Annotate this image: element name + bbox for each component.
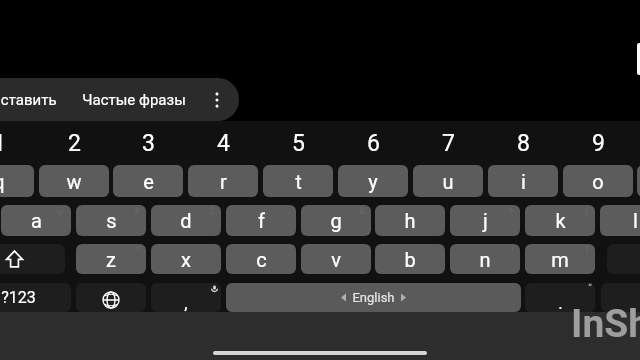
staticText: ?123 (1, 288, 36, 307)
staticText: 6 (367, 130, 380, 157)
button[interactable]: g (301, 205, 371, 236)
staticText: z (106, 248, 116, 271)
staticText: English (352, 290, 395, 305)
staticText: ( (585, 206, 589, 217)
staticText: i (521, 170, 526, 193)
staticText: n (479, 248, 491, 271)
button[interactable]: 4 (188, 128, 258, 158)
staticText: j (483, 209, 488, 232)
button[interactable]: w (39, 165, 109, 197)
button[interactable]: q (0, 165, 34, 197)
staticText: f (258, 209, 265, 232)
staticText: t (295, 170, 302, 193)
button[interactable]: h (375, 205, 445, 236)
button[interactable]: Change keyboard language (76, 283, 146, 312)
staticText: s (106, 209, 117, 232)
button[interactable]: 7 (413, 128, 483, 158)
staticText: o (592, 170, 604, 193)
staticText: Вставить (0, 91, 57, 109)
staticText: l (633, 209, 638, 232)
button[interactable]: Enter (601, 283, 640, 312)
button[interactable]: n (450, 244, 520, 274)
button[interactable]: p (637, 165, 640, 197)
staticText: # (134, 206, 140, 217)
button[interactable]: Вставить (0, 78, 74, 121)
button[interactable]: z (76, 244, 146, 274)
button[interactable]: English (226, 283, 521, 312)
button[interactable]: 9 (563, 128, 633, 158)
staticText: y (368, 170, 378, 193)
staticText: q (0, 170, 5, 193)
button[interactable]: 1 (0, 128, 34, 158)
staticText: @ (56, 206, 65, 217)
button[interactable]: a (1, 205, 71, 236)
staticText: “ (588, 283, 592, 295)
button[interactable]: f (226, 205, 296, 236)
button[interactable]: s (76, 205, 146, 236)
button[interactable]: e (113, 165, 183, 197)
button[interactable]: Shift (0, 244, 65, 274)
button[interactable]: t (263, 165, 333, 197)
button[interactable]: r (188, 165, 258, 197)
staticText: w (66, 170, 82, 193)
staticText: c (256, 248, 267, 271)
button[interactable]: c (226, 244, 296, 274)
button[interactable]: x (151, 244, 221, 274)
staticText: v (331, 248, 341, 271)
staticText: ! (511, 245, 514, 256)
staticText: & (359, 206, 365, 217)
staticText: d (180, 209, 192, 232)
button[interactable]: b (375, 244, 445, 274)
staticText: 3 (142, 130, 155, 157)
button[interactable]: j (450, 205, 520, 236)
staticText: 4 (217, 130, 230, 157)
staticText: 1 (0, 130, 6, 157)
button[interactable]: Частые фразы (74, 78, 194, 121)
button[interactable]: , (151, 283, 221, 312)
button[interactable]: 2 (39, 128, 109, 158)
button[interactable]: 3 (113, 128, 183, 158)
staticText: 9 (592, 130, 605, 157)
button[interactable]: v (301, 244, 371, 274)
button[interactable]: More options (195, 78, 239, 121)
staticText: ? (584, 245, 589, 256)
staticText: k (555, 209, 566, 232)
button[interactable]: y (338, 165, 408, 197)
button[interactable]: 6 (338, 128, 408, 158)
button[interactable]: ?123 (0, 283, 71, 312)
button[interactable]: m (525, 244, 595, 274)
staticText: u (442, 170, 454, 193)
button[interactable]: o (563, 165, 633, 197)
staticText: InSh (571, 301, 640, 347)
staticText: h (404, 209, 416, 232)
staticText: 8 (517, 130, 530, 157)
staticText: 7 (442, 130, 455, 157)
button[interactable]: k (525, 205, 595, 236)
staticText: a (31, 209, 42, 232)
button[interactable]: d (151, 205, 221, 236)
staticText: Частые фразы (82, 91, 186, 109)
button[interactable]: i (488, 165, 558, 197)
staticText: 2 (68, 130, 81, 157)
staticText: $ (209, 206, 215, 217)
staticText: e (143, 170, 154, 193)
staticText: 5 (292, 130, 305, 157)
button[interactable]: l (600, 205, 640, 236)
button[interactable]: . (525, 283, 595, 312)
staticText: . (558, 293, 563, 312)
button[interactable]: u (413, 165, 483, 197)
button[interactable]: 8 (488, 128, 558, 158)
staticText: , (184, 293, 188, 312)
button[interactable]: 5 (263, 128, 333, 158)
staticText: g (330, 209, 342, 232)
